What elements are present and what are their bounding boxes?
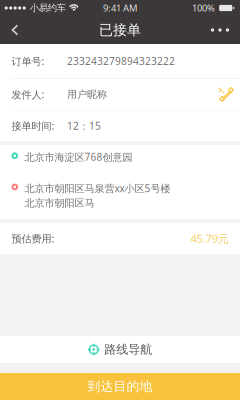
staticText: 北京市朝阳区马泉营xx小区5号楼 [24, 181, 170, 195]
staticText: 9:41 AM [103, 2, 137, 14]
button[interactable]: Call sender [213, 79, 240, 110]
staticText: 发件人: [11, 87, 44, 101]
button[interactable]: 路线导航 [0, 336, 240, 363]
staticText: 预估费用: [11, 232, 54, 245]
staticText: 到达目的地 [87, 378, 152, 394]
staticText: 45.79元 [190, 231, 228, 246]
button[interactable]: 到达目的地 [0, 373, 240, 400]
staticText: 北京市朝阳区马 [24, 197, 94, 209]
staticText: 已接单 [99, 21, 141, 39]
button[interactable]: More options [202, 16, 238, 44]
staticText: 100% [192, 2, 215, 14]
staticText: 路线导航 [104, 342, 152, 357]
staticText: 用户昵称 [67, 88, 107, 101]
staticText: 接单时间: [11, 119, 54, 133]
staticText: 233243279894323222 [67, 54, 175, 68]
staticText: 12：15 [67, 119, 101, 133]
staticText: 小易约车 [30, 2, 66, 14]
staticText: 北京市海淀区768创意园 [24, 150, 132, 164]
button[interactable]: Back [3, 16, 27, 44]
staticText: 订单号: [11, 54, 44, 68]
